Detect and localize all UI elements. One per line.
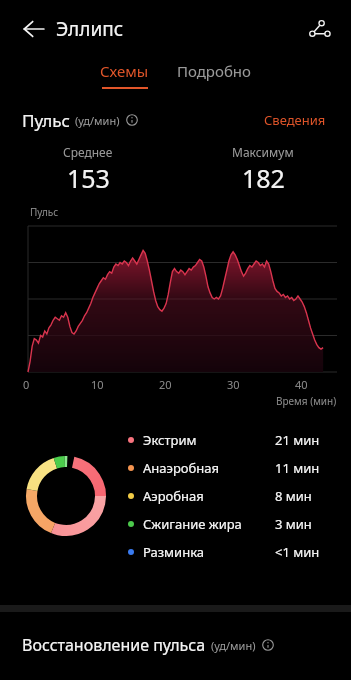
staticText: Пульс [22, 109, 70, 132]
staticText: Время (мин) [276, 394, 337, 408]
staticText: 3 мин [275, 515, 312, 533]
staticText: Разминка [143, 543, 205, 561]
staticText: Сведения [264, 111, 326, 129]
staticText: Среднее [63, 144, 113, 160]
staticText: Экстрим [143, 431, 197, 449]
staticText: (уд/мин) [75, 113, 120, 128]
staticText: Аэробная [143, 487, 204, 505]
staticText: Пульс [30, 205, 59, 219]
staticText: Эллипс [56, 16, 124, 42]
button[interactable]: Экстрим [128, 426, 333, 454]
staticText: 153 [67, 161, 110, 195]
staticText: 0 [23, 377, 30, 392]
staticText: Анаэробная [143, 459, 220, 477]
button[interactable]: Анаэробная [128, 454, 333, 482]
button[interactable]: Info [124, 112, 140, 128]
staticText: Восстановление пульса [22, 634, 206, 656]
staticText: 30 [227, 377, 240, 392]
staticText: Подробно [177, 61, 251, 81]
button[interactable]: Back [14, 9, 54, 49]
staticText: (уд/мин) [211, 638, 256, 653]
staticText: 8 мин [275, 487, 312, 505]
staticText: 10 [91, 377, 104, 392]
staticText: Схемы [100, 61, 149, 81]
button[interactable]: Share [299, 9, 339, 49]
button[interactable]: Разминка [128, 538, 333, 566]
staticText: 21 мин [275, 431, 320, 449]
staticText: 20 [159, 377, 172, 392]
staticText: Максимум [232, 144, 294, 160]
staticText: <1 мин [275, 543, 320, 561]
button[interactable]: Сжигание жира [128, 510, 333, 538]
button[interactable]: Схемы [94, 58, 155, 92]
staticText: Сжигание жира [143, 515, 242, 533]
staticText: 182 [242, 161, 285, 195]
staticText: 40 [295, 377, 308, 392]
staticText: 11 мин [275, 459, 320, 477]
button[interactable]: Сведения [261, 108, 329, 132]
button[interactable]: Info [260, 637, 276, 653]
button[interactable]: Аэробная [128, 482, 333, 510]
button[interactable]: Подробно [171, 58, 257, 84]
